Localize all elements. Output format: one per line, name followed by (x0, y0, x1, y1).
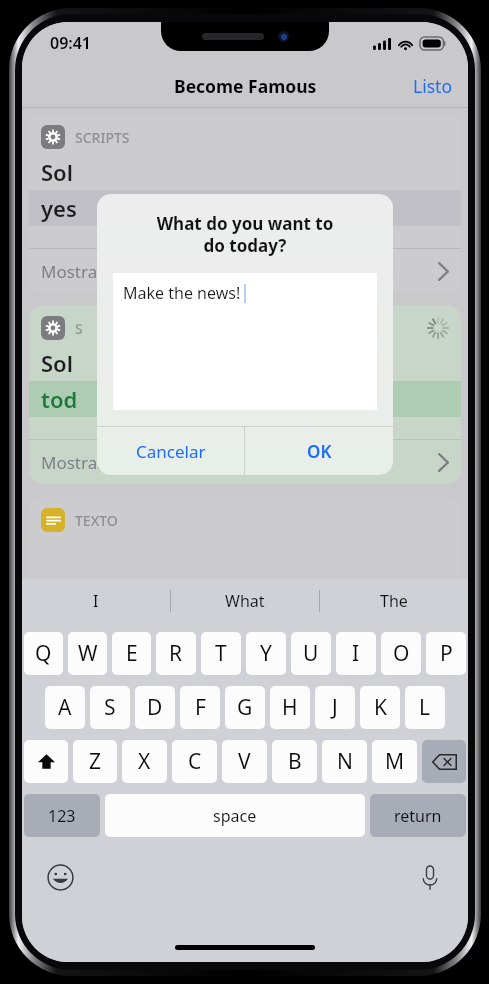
staticText: Make the news! (123, 282, 241, 304)
staticText: I (352, 639, 360, 668)
button[interactable]: U (291, 632, 331, 675)
button[interactable]: T (201, 632, 241, 675)
button[interactable]: Shift (24, 740, 68, 783)
staticText: J (332, 693, 338, 722)
button[interactable]: Mostrar más (29, 249, 461, 293)
staticText: T (215, 639, 227, 668)
button[interactable]: D (135, 686, 175, 729)
staticText: Cancelar (136, 440, 206, 463)
staticText: return (394, 805, 442, 827)
button[interactable]: Listo (397, 66, 468, 106)
button[interactable]: K (360, 686, 400, 729)
button[interactable]: N (322, 740, 367, 783)
button[interactable]: OK (245, 427, 393, 475)
button[interactable]: TEXTO (29, 496, 461, 622)
staticText: X (138, 747, 151, 776)
button[interactable]: H (270, 686, 310, 729)
staticText: R (169, 639, 183, 668)
staticText: H (282, 693, 298, 722)
staticText: V (238, 747, 251, 776)
staticText: A (58, 693, 72, 722)
staticText: M (385, 747, 405, 776)
staticText: Y (260, 639, 272, 668)
staticText: D (147, 693, 163, 722)
button[interactable]: Delete (422, 740, 466, 783)
staticText: Q (35, 639, 52, 668)
button[interactable]: S (90, 686, 130, 729)
button[interactable]: I (336, 632, 376, 675)
button[interactable]: Cancelar (97, 427, 244, 475)
button[interactable]: R (156, 632, 196, 675)
button[interactable]: Z (73, 740, 117, 783)
button[interactable]: A (45, 686, 85, 729)
staticText: Mostrar más (41, 451, 143, 474)
staticText: tod (41, 384, 78, 414)
staticText: N (337, 747, 353, 776)
button[interactable]: Emoji (40, 857, 80, 897)
button[interactable]: O (381, 632, 421, 675)
staticText: What (225, 590, 265, 612)
staticText: 09:41 (50, 32, 92, 54)
button[interactable]: J (315, 686, 355, 729)
staticText: S (75, 319, 83, 338)
staticText: yes (41, 193, 77, 223)
button[interactable]: F (180, 686, 220, 729)
button[interactable]: C (172, 740, 217, 783)
button[interactable]: Y (246, 632, 286, 675)
staticText: L (419, 693, 431, 722)
staticText: S (104, 693, 116, 722)
button[interactable]: SCRIPTS (29, 114, 461, 293)
staticText: G (237, 693, 253, 722)
button[interactable]: M (372, 740, 417, 783)
staticText: I (93, 590, 99, 612)
staticText: OK (307, 440, 332, 463)
staticText: C (188, 747, 202, 776)
staticText: Listo (413, 74, 452, 98)
button[interactable]: 123 (24, 794, 100, 837)
button[interactable]: X (122, 740, 167, 783)
staticText: U (303, 639, 319, 668)
button[interactable]: Q (24, 632, 63, 675)
staticText: P (440, 639, 453, 668)
staticText: SCRIPTS (75, 128, 130, 147)
staticText: 123 (48, 805, 76, 827)
button[interactable]: The (320, 579, 468, 623)
staticText: Z (89, 747, 102, 776)
staticText: The (380, 590, 408, 612)
staticText: B (288, 747, 302, 776)
staticText: TEXTO (75, 511, 118, 530)
button[interactable]: space (105, 794, 365, 837)
staticText: E (126, 639, 138, 668)
staticText: What do you want to do today? (113, 212, 377, 257)
staticText: W (78, 639, 98, 668)
button[interactable]: B (272, 740, 317, 783)
button[interactable]: V (222, 740, 267, 783)
staticText: Sol (41, 157, 73, 187)
button[interactable]: P (426, 632, 466, 675)
button[interactable]: E (112, 632, 151, 675)
button[interactable]: Mostrar más (29, 440, 461, 484)
staticText: O (393, 639, 410, 668)
button[interactable]: Dictation (410, 857, 450, 897)
button[interactable]: Make the news! (113, 273, 377, 410)
staticText: space (213, 805, 257, 827)
staticText: F (195, 693, 206, 722)
button[interactable]: S (29, 305, 461, 484)
button[interactable]: I (22, 579, 170, 623)
button[interactable]: L (405, 686, 445, 729)
staticText: Become Famous (174, 74, 317, 98)
staticText: Sol (41, 348, 73, 378)
staticText: K (374, 693, 387, 722)
button[interactable]: W (68, 632, 107, 675)
button[interactable]: G (225, 686, 265, 729)
button[interactable]: return (370, 794, 466, 837)
button[interactable]: What (171, 579, 319, 623)
staticText: Mostrar más (41, 260, 143, 283)
